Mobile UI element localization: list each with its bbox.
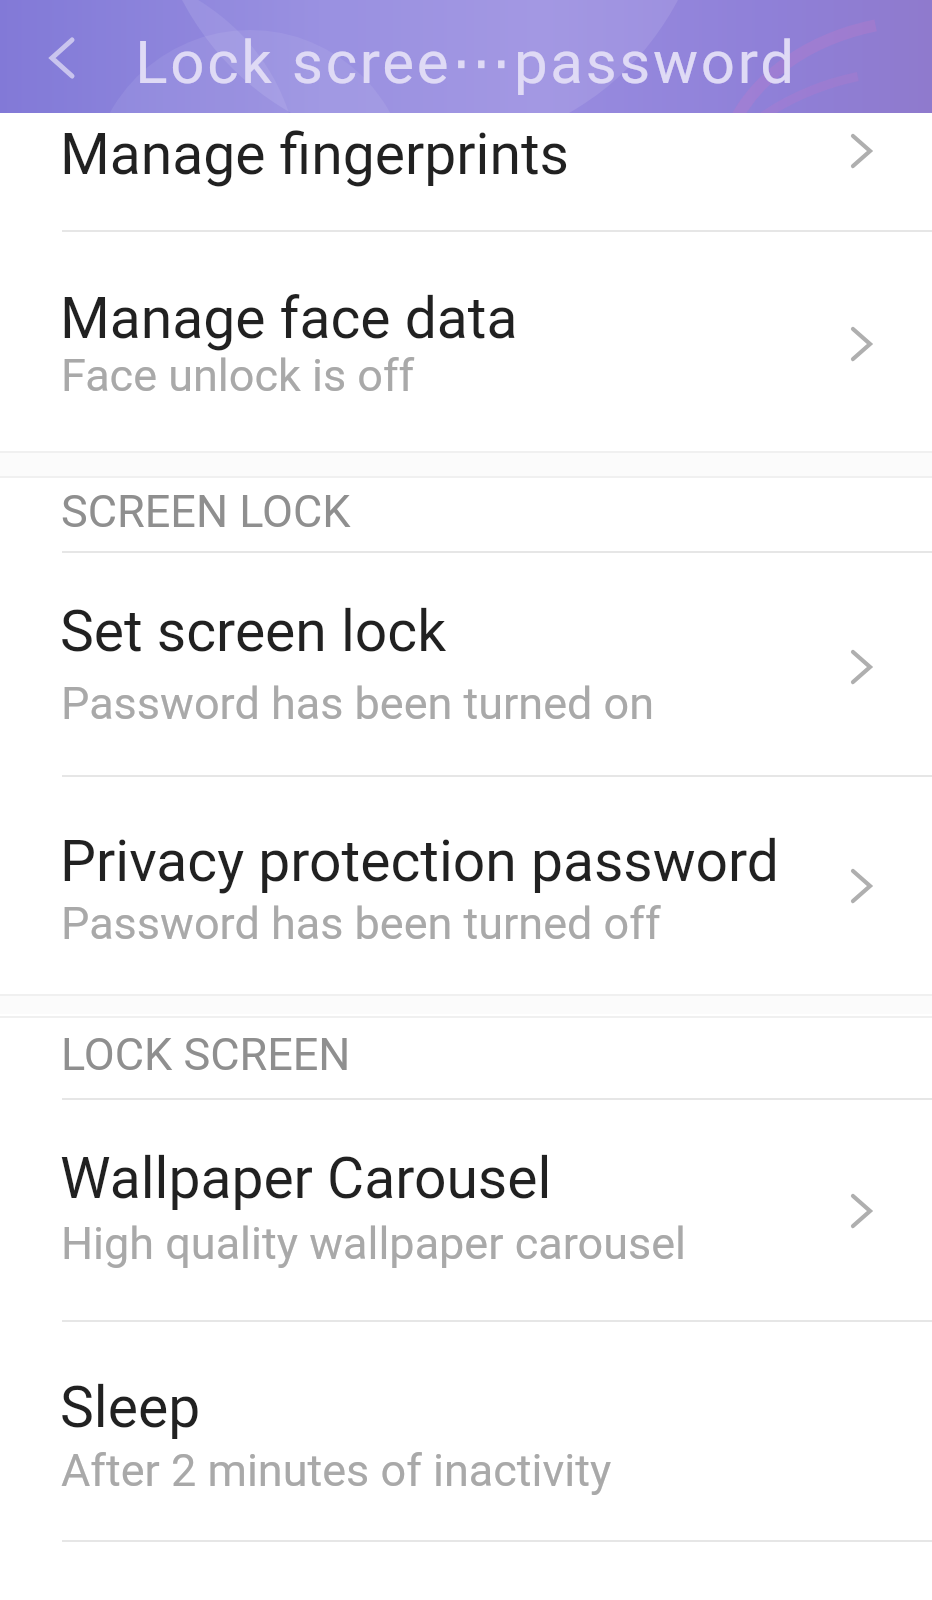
staticText: SCREEN LOCK: [61, 485, 351, 538]
staticText: Password has been turned off: [61, 897, 661, 950]
staticText: High quality wallpaper carousel: [61, 1217, 686, 1270]
button[interactable]: Sleep: [0, 1320, 932, 1540]
staticText: Privacy protection password: [60, 828, 780, 895]
staticText: Manage fingerprints: [60, 121, 569, 188]
button[interactable]: [32, 28, 92, 88]
staticText: Face unlock is off: [61, 349, 415, 402]
staticText: After 2 minutes of inactivity: [61, 1444, 612, 1497]
button[interactable]: Set screen lock: [0, 551, 932, 775]
button[interactable]: Wallpaper Carousel: [0, 1098, 932, 1320]
button[interactable]: Manage fingerprints: [0, 113, 932, 230]
staticText: Password has been turned on: [61, 677, 655, 730]
staticText: Set screen lock: [60, 598, 447, 665]
staticText: Lock scree⋯password: [0, 27, 932, 97]
staticText: Sleep: [60, 1374, 201, 1441]
staticText: Wallpaper Carousel: [60, 1145, 552, 1212]
staticText: LOCK SCREEN: [61, 1028, 351, 1081]
button[interactable]: Privacy protection password: [0, 775, 932, 994]
button[interactable]: Manage face data: [0, 230, 932, 451]
staticText: Manage face data: [60, 285, 518, 352]
